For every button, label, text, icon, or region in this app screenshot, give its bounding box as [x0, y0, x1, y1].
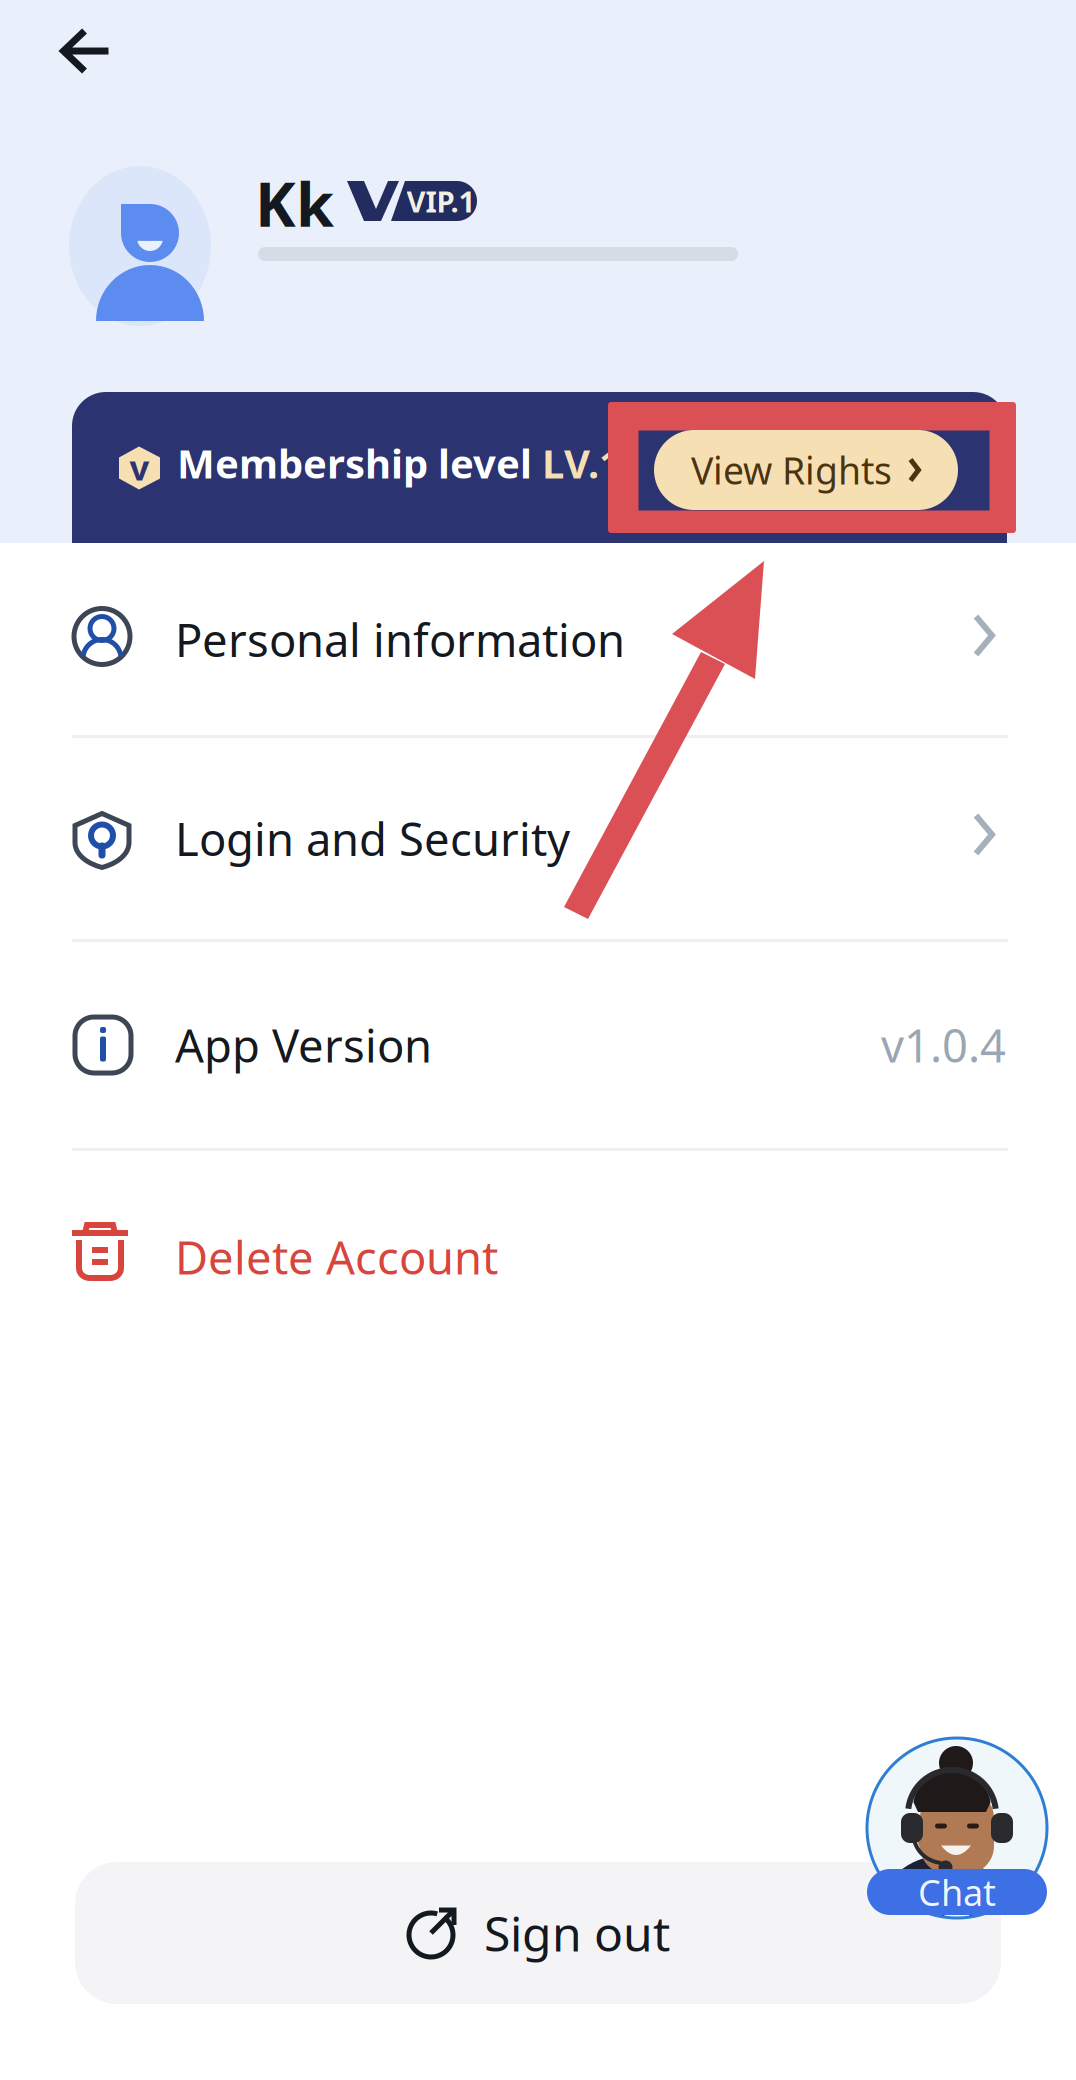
button[interactable]: Chat [867, 1869, 1047, 1915]
staticText: App Version [175, 1015, 432, 1075]
button[interactable]: Live chat with an agent [867, 1738, 1047, 1918]
staticText: v [129, 444, 149, 490]
staticText: Kk [255, 162, 334, 244]
staticText: LV.1 [542, 436, 622, 489]
staticText: Delete Account [175, 1227, 498, 1287]
button[interactable]: Sign out [75, 1862, 1001, 2004]
button[interactable]: Personal information [0, 544, 1076, 735]
button[interactable]: Delete Account [0, 1151, 1076, 1363]
button[interactable]: App Version [0, 942, 1076, 1148]
staticText: Chat [918, 1868, 996, 1916]
staticText: Personal information [175, 609, 625, 670]
staticText: VIP.1 [406, 181, 475, 220]
staticText: Login and Security [175, 808, 570, 869]
staticText: Membership level [177, 436, 542, 489]
staticText: Sign out [484, 1901, 670, 1965]
button[interactable]: View Rights [654, 430, 958, 510]
staticText: v1.0.4 [881, 1015, 1006, 1075]
button[interactable]: Login and Security [0, 738, 1076, 939]
staticText: View Rights [691, 445, 892, 495]
button[interactable]: Back [38, 11, 134, 91]
